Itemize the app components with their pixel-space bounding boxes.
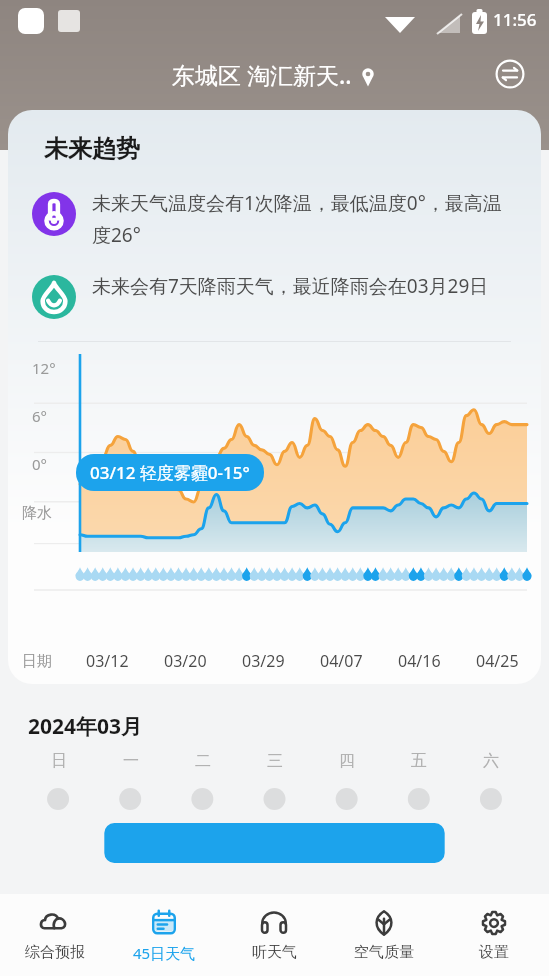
staticText: 未来会有7天降雨天气，最近降雨会在03月29日 [92,273,517,299]
staticText: 04/16 [398,650,441,672]
staticText: 日 [51,751,67,771]
button[interactable]: 设置 [439,894,549,976]
staticText: 四 [339,751,355,771]
staticText: 空气质量 [354,943,414,962]
staticText: 二 [195,751,211,771]
staticText: 综合预报 [25,943,85,962]
staticText: 2024年03月 [28,712,143,741]
staticText: 0° [32,454,48,474]
staticText: 03/20 [164,650,207,672]
staticText: 日期 [22,652,52,671]
staticText: 04/07 [320,650,363,672]
staticText: 03/12 [86,650,129,672]
staticText: 12° [32,358,56,378]
button[interactable]: 未来会有7天降雨天气，最近降雨会在03月29日 [32,273,517,319]
button[interactable]: 空气质量 [329,894,439,976]
staticText: 03/29 [242,650,285,672]
staticText: 04/25 [476,650,519,672]
button[interactable]: 45日天气 [109,894,219,976]
staticText: 三 [267,751,283,771]
staticText: 一 [123,751,139,771]
staticText: 未来趋势 [44,134,140,164]
staticText: 听天气 [252,943,297,962]
button[interactable]: 切换单位 [491,55,529,93]
staticText: 6° [32,406,48,426]
staticText: 东城区 淘汇新天.. [172,59,352,90]
button[interactable]: 未来天气温度会有1次降温，最低温度0°，最高温度26° [32,190,517,247]
button[interactable]: 综合预报 [0,894,109,976]
button[interactable]: 03/12 轻度雾霾0-15° [90,461,250,484]
staticText: 五 [411,751,427,771]
staticText: 未来天气温度会有1次降温，最低温度0°，最高温度26° [92,190,517,247]
staticText: 45日天气 [133,943,196,963]
staticText: 降水 [22,504,52,523]
staticText: 11:56 [493,8,537,31]
staticText: 设置 [479,943,509,962]
staticText: 03/12 轻度雾霾0-15° [90,461,250,484]
button[interactable]: 听天气 [219,894,329,976]
staticText: 六 [483,751,499,771]
